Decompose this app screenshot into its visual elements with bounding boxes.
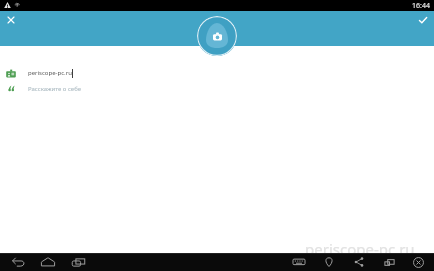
button[interactable]: Location bbox=[320, 253, 338, 271]
button[interactable]: Keyboard bbox=[290, 253, 308, 271]
button[interactable]: Расскажите о себе bbox=[0, 81, 434, 97]
button[interactable]: Done bbox=[414, 11, 432, 29]
button[interactable]: Close bbox=[409, 253, 427, 271]
button[interactable]: Change photo bbox=[197, 16, 237, 56]
staticText: Расскажите о себе bbox=[28, 85, 82, 93]
button[interactable]: Share bbox=[350, 253, 368, 271]
staticText: 16:44 bbox=[412, 1, 430, 11]
staticText: periscope-pc.ru bbox=[305, 239, 415, 259]
button[interactable]: Recents bbox=[69, 253, 87, 271]
button[interactable]: Cast bbox=[380, 253, 398, 271]
button[interactable]: Close bbox=[2, 11, 20, 29]
staticText: periscope-pc.ru bbox=[28, 69, 72, 77]
button[interactable]: Home bbox=[39, 253, 57, 271]
button[interactable]: Back bbox=[9, 253, 27, 271]
button[interactable]: periscope-pc.ru bbox=[0, 65, 434, 81]
